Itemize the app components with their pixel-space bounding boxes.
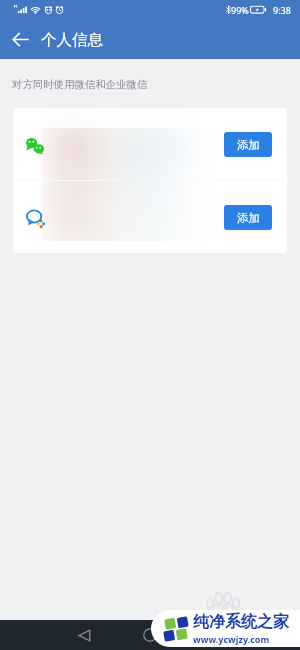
staticText: 9:38 <box>273 4 291 16</box>
button[interactable]: 添加 <box>224 132 272 157</box>
staticText: 99% <box>231 4 249 16</box>
button[interactable]: Back <box>60 620 108 650</box>
staticText: 添加 <box>237 138 260 152</box>
staticText: 添加 <box>237 211 260 225</box>
staticText: www.ycwjzy.com <box>193 633 270 645</box>
button[interactable]: Home <box>126 620 174 650</box>
button[interactable]: Recent apps <box>192 620 240 650</box>
button[interactable]: Back <box>0 20 40 59</box>
staticText: 对方同时使用微信和企业微信 <box>12 78 148 91</box>
button[interactable]: 添加 <box>13 181 287 253</box>
staticText: 个人信息 <box>41 30 103 50</box>
staticText: 纯净系统之家 <box>193 612 289 632</box>
button[interactable]: 添加 <box>13 108 287 180</box>
button[interactable]: 添加 <box>224 205 272 230</box>
